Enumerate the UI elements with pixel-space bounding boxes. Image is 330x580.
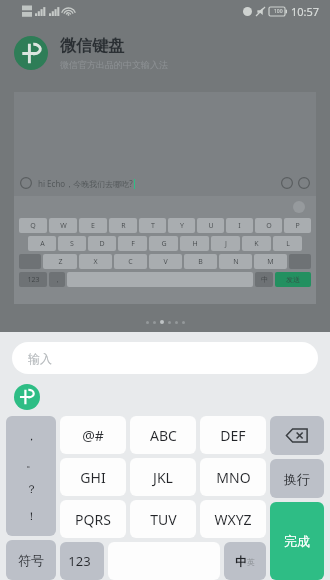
- staticText: Y: [180, 221, 184, 231]
- staticText: U: [208, 221, 214, 231]
- button[interactable]: A: [28, 236, 56, 251]
- staticText: K: [254, 239, 259, 249]
- staticText: N: [233, 257, 239, 267]
- button[interactable]: PQRS: [60, 500, 126, 538]
- staticText: DEF: [220, 426, 246, 445]
- button[interactable]: 完成: [270, 502, 324, 580]
- button[interactable]: C: [114, 254, 147, 269]
- button[interactable]: J: [211, 236, 240, 251]
- button[interactable]: WXYZ: [200, 500, 266, 538]
- staticText: R: [121, 221, 126, 231]
- staticText: 100: [274, 8, 283, 15]
- staticText: 123: [27, 275, 40, 285]
- staticText: 发送: [286, 275, 300, 284]
- staticText: T: [151, 221, 155, 231]
- button[interactable]: 发送: [275, 272, 311, 287]
- button[interactable]: E: [79, 218, 107, 233]
- button[interactable]: [14, 384, 40, 410]
- button[interactable]: 输入: [12, 342, 318, 374]
- button[interactable]: 符号: [6, 540, 56, 580]
- button[interactable]: Z: [43, 254, 77, 269]
- button[interactable]: S: [58, 236, 86, 251]
- staticText: C: [128, 257, 133, 267]
- staticText: Q: [30, 221, 36, 231]
- staticText: H: [192, 239, 198, 249]
- staticText: I: [238, 221, 241, 231]
- button[interactable]: @#: [60, 416, 126, 454]
- staticText: 10:57: [291, 4, 320, 19]
- button[interactable]: MNO: [200, 458, 266, 496]
- button[interactable]: U: [197, 218, 224, 233]
- button[interactable]: B: [184, 254, 217, 269]
- staticText: Z: [58, 257, 63, 267]
- staticText: 中: [235, 554, 247, 569]
- staticText: W: [60, 221, 67, 231]
- button[interactable]: GHI: [60, 458, 126, 496]
- button[interactable]: P: [284, 218, 311, 233]
- staticText: 输入: [28, 351, 52, 366]
- button[interactable]: N: [219, 254, 252, 269]
- staticText: 换行: [284, 471, 310, 487]
- staticText: 英: [247, 557, 255, 567]
- button[interactable]: L: [273, 236, 302, 251]
- button[interactable]: DEF: [200, 416, 266, 454]
- button[interactable]: T: [139, 218, 166, 233]
- staticText: X: [93, 257, 98, 267]
- staticText: A: [40, 239, 45, 249]
- staticText: E: [91, 221, 95, 231]
- staticText: MNO: [216, 468, 251, 487]
- button[interactable]: 中英文切换: [224, 542, 266, 580]
- staticText: V: [163, 257, 168, 267]
- button[interactable]: 123: [19, 272, 47, 287]
- staticText: O: [266, 221, 272, 231]
- staticText: WXYZ: [214, 510, 252, 529]
- button[interactable]: X: [79, 254, 112, 269]
- button[interactable]: 换行: [270, 459, 324, 498]
- staticText: D: [99, 239, 105, 249]
- staticText: 123: [68, 552, 91, 570]
- staticText: 完成: [284, 533, 310, 549]
- button[interactable]: K: [242, 236, 271, 251]
- button[interactable]: F: [118, 236, 147, 251]
- button[interactable]: ABC: [130, 416, 196, 454]
- staticText: hi Echo，今晚我们去哪吃?: [38, 178, 133, 189]
- staticText: S: [70, 239, 74, 249]
- button[interactable]: O: [255, 218, 282, 233]
- button[interactable]: M: [254, 254, 287, 269]
- staticText: P: [295, 221, 300, 231]
- button[interactable]: Y: [168, 218, 195, 233]
- staticText: 符号: [18, 552, 44, 568]
- button[interactable]: R: [109, 218, 137, 233]
- button[interactable]: G: [149, 236, 178, 251]
- staticText: ABC: [150, 426, 177, 445]
- staticText: ，: [26, 429, 37, 443]
- button[interactable]: V: [149, 254, 182, 269]
- staticText: ，: [54, 275, 61, 284]
- button[interactable]: JKL: [130, 458, 196, 496]
- staticText: G: [161, 239, 167, 249]
- button[interactable]: ，: [6, 416, 56, 536]
- button[interactable]: 删除: [270, 416, 324, 455]
- button[interactable]: Q: [19, 218, 47, 233]
- button[interactable]: [14, 36, 48, 70]
- button[interactable]: H: [180, 236, 209, 251]
- button[interactable]: 中: [255, 272, 273, 287]
- staticText: M: [267, 257, 274, 267]
- staticText: B: [198, 257, 203, 267]
- button[interactable]: TUV: [130, 500, 196, 538]
- staticText: 中: [261, 275, 268, 284]
- button[interactable]: W: [49, 218, 77, 233]
- button[interactable]: D: [88, 236, 116, 251]
- button[interactable]: 123: [60, 542, 104, 580]
- button[interactable]: 微信键盘: [14, 36, 168, 70]
- staticText: TUV: [150, 510, 177, 529]
- staticText: L: [286, 239, 290, 249]
- staticText: JKL: [153, 468, 173, 487]
- button[interactable]: I: [226, 218, 253, 233]
- staticText: ？: [26, 482, 37, 496]
